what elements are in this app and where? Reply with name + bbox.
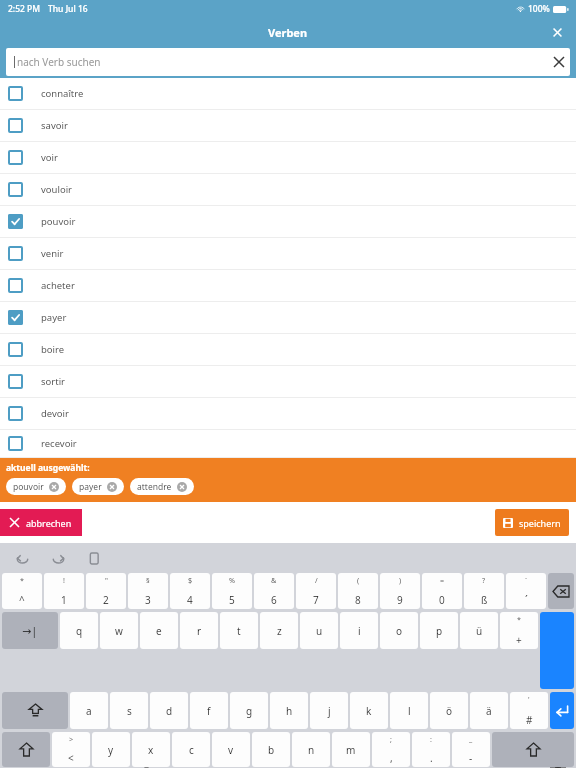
staticText: recevoir: [41, 437, 77, 450]
staticText: c: [189, 743, 194, 757]
button[interactable]: venir: [0, 238, 576, 270]
button[interactable]: _: [452, 732, 490, 767]
button[interactable]: :: [412, 732, 450, 767]
button[interactable]: Umschalt: [2, 692, 68, 729]
button[interactable]: >: [52, 732, 90, 767]
button[interactable]: boire: [0, 334, 576, 366]
button[interactable]: Eingabe: [540, 612, 574, 689]
button[interactable]: recevoir: [0, 430, 576, 458]
button[interactable]: (: [338, 573, 378, 609]
staticText: 3: [145, 593, 151, 607]
staticText: voir: [41, 151, 58, 164]
staticText: acheter: [41, 279, 75, 292]
button[interactable]: v: [212, 732, 250, 767]
button[interactable]: payer: [72, 478, 124, 495]
button[interactable]: ;: [372, 732, 410, 767]
staticText: i: [358, 624, 361, 638]
button[interactable]: f: [190, 692, 228, 729]
button[interactable]: acheter: [0, 270, 576, 302]
button[interactable]: ö: [430, 692, 468, 729]
button[interactable]: sortir: [0, 366, 576, 398]
button[interactable]: ): [380, 573, 420, 609]
button[interactable]: Umschalt rechts: [492, 732, 574, 767]
staticText: l: [408, 704, 411, 718]
button[interactable]: s: [110, 692, 148, 729]
button[interactable]: ä: [470, 692, 508, 729]
staticText: savoir: [41, 119, 68, 132]
button[interactable]: %: [212, 573, 252, 609]
button[interactable]: g: [230, 692, 268, 729]
button[interactable]: k: [350, 692, 388, 729]
button[interactable]: z: [260, 612, 298, 649]
button[interactable]: devoir: [0, 398, 576, 430]
button[interactable]: *: [500, 612, 538, 649]
staticText: 2: [103, 593, 109, 607]
button[interactable]: n: [292, 732, 330, 767]
button[interactable]: [550, 692, 574, 729]
button[interactable]: Rückgängig: [12, 548, 32, 568]
button[interactable]: connaître: [0, 78, 576, 110]
staticText: 8: [355, 593, 361, 607]
staticText: boire: [41, 343, 65, 356]
button[interactable]: h: [270, 692, 308, 729]
button[interactable]: c: [172, 732, 210, 767]
button[interactable]: j: [310, 692, 348, 729]
button[interactable]: ?: [464, 573, 504, 609]
staticText: h: [286, 704, 293, 718]
button[interactable]: u: [300, 612, 338, 649]
button[interactable]: vouloir: [0, 174, 576, 206]
button[interactable]: b: [252, 732, 290, 767]
button[interactable]: y: [92, 732, 130, 767]
button[interactable]: o: [380, 612, 418, 649]
staticText: j: [328, 704, 331, 718]
button[interactable]: Umschalt: [2, 732, 50, 767]
button[interactable]: attendre: [130, 478, 194, 495]
staticText: s: [127, 704, 132, 718]
button[interactable]: Tabulator: [2, 612, 58, 649]
button[interactable]: d: [150, 692, 188, 729]
staticText: m: [346, 743, 356, 757]
button[interactable]: x: [132, 732, 170, 767]
button[interactable]: t: [220, 612, 258, 649]
button[interactable]: savoir: [0, 110, 576, 142]
button[interactable]: l: [390, 692, 428, 729]
button[interactable]: §: [128, 573, 168, 609]
button[interactable]: ": [86, 573, 126, 609]
button[interactable]: &: [254, 573, 294, 609]
button[interactable]: Wiederholen: [48, 548, 68, 568]
button[interactable]: r: [180, 612, 218, 649]
button[interactable]: pouvoir: [0, 206, 576, 238]
staticText: ': [528, 694, 530, 704]
button[interactable]: `: [506, 573, 546, 609]
staticText: w: [115, 624, 123, 638]
button[interactable]: Schließen: [546, 21, 568, 43]
button[interactable]: speichern: [495, 509, 569, 536]
button[interactable]: !: [44, 573, 84, 609]
button[interactable]: =: [422, 573, 462, 609]
button[interactable]: pouvoir: [6, 478, 66, 495]
button[interactable]: nach Verb suchen: [6, 48, 570, 76]
staticText: n: [308, 743, 315, 757]
button[interactable]: i: [340, 612, 378, 649]
button[interactable]: m: [332, 732, 370, 767]
button[interactable]: ü: [460, 612, 498, 649]
staticText: $: [188, 575, 193, 585]
button[interactable]: Einfügen: [84, 548, 104, 568]
button[interactable]: $: [170, 573, 210, 609]
button[interactable]: abbrechen: [0, 509, 82, 536]
staticText: 0: [439, 593, 445, 607]
button[interactable]: w: [100, 612, 138, 649]
staticText: ´: [525, 593, 528, 607]
button[interactable]: /: [296, 573, 336, 609]
button[interactable]: *: [2, 573, 42, 609]
button[interactable]: Suche löschen: [548, 51, 570, 73]
button[interactable]: q: [60, 612, 98, 649]
button[interactable]: voir: [0, 142, 576, 174]
button[interactable]: ': [510, 692, 548, 729]
button[interactable]: p: [420, 612, 458, 649]
staticText: #: [526, 713, 533, 727]
button[interactable]: e: [140, 612, 178, 649]
button[interactable]: a: [70, 692, 108, 729]
button[interactable]: Löschen: [548, 573, 574, 609]
button[interactable]: payer: [0, 302, 576, 334]
